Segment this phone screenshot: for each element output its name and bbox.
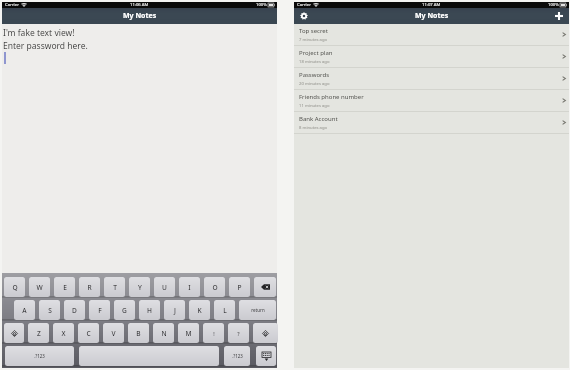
staticText: L bbox=[223, 306, 227, 315]
button[interactable]: Add note bbox=[549, 8, 569, 24]
staticText: H bbox=[147, 306, 152, 315]
button[interactable]: E bbox=[54, 277, 75, 297]
staticText: U bbox=[162, 283, 167, 292]
button[interactable]: Bank Account bbox=[294, 112, 569, 134]
button[interactable]: Shift bbox=[4, 323, 24, 343]
staticText: My Notes bbox=[123, 11, 157, 21]
staticText: 100% bbox=[548, 2, 559, 8]
staticText: Top secret bbox=[299, 27, 328, 35]
staticText: Passwords bbox=[299, 71, 330, 79]
button[interactable]: K bbox=[189, 300, 210, 320]
staticText: 11 minutes ago bbox=[299, 103, 330, 109]
staticText: O bbox=[212, 283, 218, 292]
staticText: 18 minutes ago bbox=[299, 59, 330, 65]
staticText: My Notes bbox=[415, 11, 449, 21]
staticText: R bbox=[87, 283, 92, 292]
staticText: A bbox=[22, 306, 27, 315]
staticText: 7 minutes ago bbox=[299, 37, 328, 43]
button[interactable]: A bbox=[14, 300, 35, 320]
staticText: C bbox=[86, 329, 91, 338]
button[interactable]: I bbox=[179, 277, 200, 297]
button[interactable]: Y bbox=[129, 277, 150, 297]
button[interactable]: Shift bbox=[253, 323, 278, 343]
button[interactable]: C bbox=[78, 323, 99, 343]
button[interactable]: G bbox=[114, 300, 135, 320]
staticText: B bbox=[136, 329, 141, 338]
staticText: V bbox=[111, 329, 116, 338]
button[interactable]: N bbox=[153, 323, 174, 343]
staticText: 100% bbox=[256, 2, 267, 8]
button[interactable]: J bbox=[164, 300, 185, 320]
staticText: I'm fake text view! Enter password here. bbox=[3, 27, 88, 51]
button[interactable]: O bbox=[204, 277, 225, 297]
button[interactable]: Project plan bbox=[294, 46, 569, 68]
button[interactable] bbox=[79, 346, 219, 366]
button[interactable]: L bbox=[214, 300, 235, 320]
staticText: F bbox=[98, 306, 102, 315]
staticText: D bbox=[72, 306, 77, 315]
staticText: S bbox=[48, 306, 52, 315]
button[interactable]: B bbox=[128, 323, 149, 343]
staticText: I bbox=[188, 283, 191, 292]
staticText: ? bbox=[237, 330, 240, 337]
button[interactable]: Friends phone number bbox=[294, 90, 569, 112]
staticText: J bbox=[174, 306, 176, 315]
staticText: return bbox=[251, 307, 265, 313]
button[interactable]: U bbox=[154, 277, 175, 297]
staticText: Q bbox=[12, 283, 18, 292]
button[interactable]: Passwords bbox=[294, 68, 569, 90]
button[interactable]: X bbox=[53, 323, 74, 343]
button[interactable]: D bbox=[64, 300, 85, 320]
button[interactable]: W bbox=[29, 277, 50, 297]
staticText: T bbox=[113, 283, 117, 292]
staticText: Friends phone number bbox=[299, 93, 364, 101]
staticText: 20 minutes ago bbox=[299, 81, 330, 87]
button[interactable]: P bbox=[229, 277, 250, 297]
button[interactable]: F bbox=[89, 300, 110, 320]
button[interactable]: T bbox=[104, 277, 125, 297]
button[interactable]: Q bbox=[4, 277, 25, 297]
staticText: Carrier bbox=[5, 2, 19, 8]
staticText: M bbox=[185, 329, 192, 338]
staticText: Carrier bbox=[297, 2, 311, 8]
staticText: Project plan bbox=[299, 49, 333, 57]
button[interactable]: .?123 bbox=[224, 346, 250, 366]
staticText: 11:07 AM bbox=[422, 2, 441, 8]
button[interactable]: Z bbox=[28, 323, 49, 343]
staticText: G bbox=[122, 306, 127, 315]
button[interactable]: return bbox=[239, 300, 276, 320]
button[interactable]: Hide keyboard bbox=[256, 346, 276, 366]
button[interactable]: ? bbox=[228, 323, 249, 343]
staticText: 11:06 AM bbox=[130, 2, 149, 8]
staticText: 8 minutes ago bbox=[299, 125, 328, 131]
button[interactable]: H bbox=[139, 300, 160, 320]
button[interactable]: M bbox=[178, 323, 199, 343]
staticText: P bbox=[237, 283, 242, 292]
button[interactable]: S bbox=[39, 300, 60, 320]
staticText: .?123 bbox=[232, 353, 243, 359]
staticText: E bbox=[63, 283, 67, 292]
staticText: N bbox=[161, 329, 167, 338]
button[interactable]: V bbox=[103, 323, 124, 343]
staticText: Bank Account bbox=[299, 115, 338, 123]
staticText: W bbox=[36, 283, 43, 292]
button[interactable]: Backspace bbox=[254, 277, 276, 297]
button[interactable]: .?123 bbox=[5, 346, 74, 366]
staticText: ! bbox=[213, 330, 215, 337]
staticText: Z bbox=[37, 329, 41, 338]
button[interactable]: ! bbox=[203, 323, 224, 343]
button[interactable]: Top secret bbox=[294, 24, 569, 46]
staticText: K bbox=[197, 306, 202, 315]
button[interactable]: Settings bbox=[294, 8, 314, 24]
staticText: Y bbox=[138, 283, 142, 292]
staticText: .?123 bbox=[34, 353, 45, 359]
staticText: X bbox=[61, 329, 66, 338]
button[interactable]: R bbox=[79, 277, 100, 297]
